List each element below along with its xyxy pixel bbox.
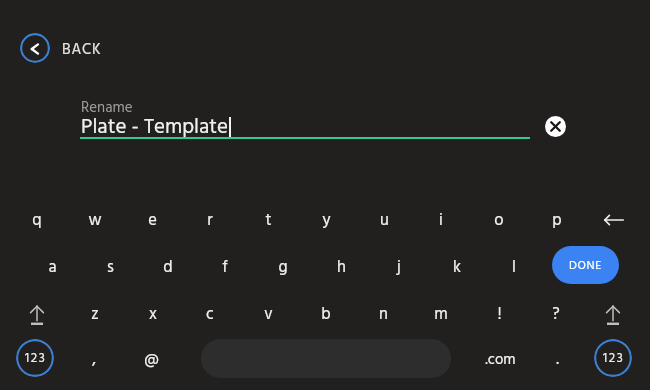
staticText: n: [379, 302, 388, 328]
staticText: DONE: [569, 256, 602, 275]
button[interactable]: Clear text: [545, 116, 566, 137]
button[interactable]: Numbers and symbols: [594, 339, 632, 377]
staticText: b: [321, 302, 331, 328]
staticText: e: [148, 208, 157, 234]
staticText: i: [439, 208, 443, 234]
staticText: x: [149, 302, 157, 328]
button[interactable]: u: [357, 199, 411, 243]
button[interactable]: ?: [529, 293, 583, 337]
staticText: ,: [92, 347, 96, 373]
button[interactable]: t: [241, 199, 295, 243]
staticText: v: [264, 302, 273, 328]
staticText: a: [48, 255, 57, 281]
button[interactable]: e: [125, 199, 179, 243]
staticText: w: [88, 208, 102, 234]
staticText: Rename: [81, 96, 133, 120]
button[interactable]: Back: [20, 33, 50, 63]
staticText: s: [107, 255, 114, 281]
staticText: t: [265, 208, 272, 234]
button[interactable]: Shift: [10, 294, 64, 338]
staticText: o: [494, 208, 504, 234]
staticText: l: [512, 255, 516, 281]
button[interactable]: c: [183, 293, 237, 337]
button[interactable]: .: [530, 338, 584, 382]
button[interactable]: ,: [67, 338, 121, 382]
button[interactable]: Numbers and symbols: [16, 339, 54, 377]
button[interactable]: .com: [473, 338, 527, 382]
staticText: z: [91, 302, 99, 328]
button[interactable]: x: [126, 293, 180, 337]
staticText: m: [434, 302, 448, 328]
staticText: BACK: [62, 38, 102, 62]
staticText: @: [144, 347, 159, 373]
button[interactable]: l: [487, 246, 541, 290]
button[interactable]: q: [10, 199, 64, 243]
staticText: 123: [25, 348, 47, 369]
staticText: y: [322, 208, 331, 234]
staticText: ?: [552, 302, 560, 328]
staticText: !: [497, 302, 502, 328]
button[interactable]: v: [241, 293, 295, 337]
staticText: j: [397, 255, 401, 281]
button[interactable]: z: [68, 293, 122, 337]
button[interactable]: !: [472, 293, 526, 337]
button[interactable]: j: [372, 246, 426, 290]
staticText: d: [163, 255, 173, 281]
button[interactable]: m: [414, 293, 468, 337]
button[interactable]: a: [25, 246, 79, 290]
staticText: .: [556, 347, 559, 373]
button[interactable]: g: [256, 246, 310, 290]
staticText: r: [207, 208, 213, 234]
button[interactable]: o: [472, 199, 526, 243]
button[interactable]: s: [83, 246, 137, 290]
button[interactable]: k: [430, 246, 484, 290]
button[interactable]: i: [414, 199, 468, 243]
button[interactable]: BACK: [62, 37, 106, 63]
staticText: .com: [485, 348, 516, 372]
staticText: q: [32, 208, 42, 234]
button[interactable]: Shift: [586, 294, 640, 338]
button[interactable]: y: [299, 199, 353, 243]
staticText: 123: [603, 348, 625, 369]
button[interactable]: DONE: [552, 246, 619, 284]
button[interactable]: r: [183, 199, 237, 243]
staticText: c: [206, 302, 214, 328]
staticText: k: [453, 255, 461, 281]
staticText: u: [380, 208, 389, 234]
button[interactable]: w: [68, 199, 122, 243]
button[interactable]: @: [124, 338, 178, 382]
button[interactable]: h: [314, 246, 368, 290]
button[interactable]: Rename text field: [80, 94, 530, 139]
staticText: Plate - Template: [81, 111, 229, 145]
staticText: g: [278, 255, 288, 281]
staticText: f: [222, 255, 228, 281]
button[interactable]: n: [356, 293, 410, 337]
staticText: p: [552, 208, 562, 234]
button[interactable]: f: [198, 246, 252, 290]
button[interactable]: b: [299, 293, 353, 337]
button[interactable]: p: [530, 199, 584, 243]
staticText: h: [337, 255, 346, 281]
button[interactable]: d: [141, 246, 195, 290]
button[interactable]: Backspace: [587, 198, 641, 242]
